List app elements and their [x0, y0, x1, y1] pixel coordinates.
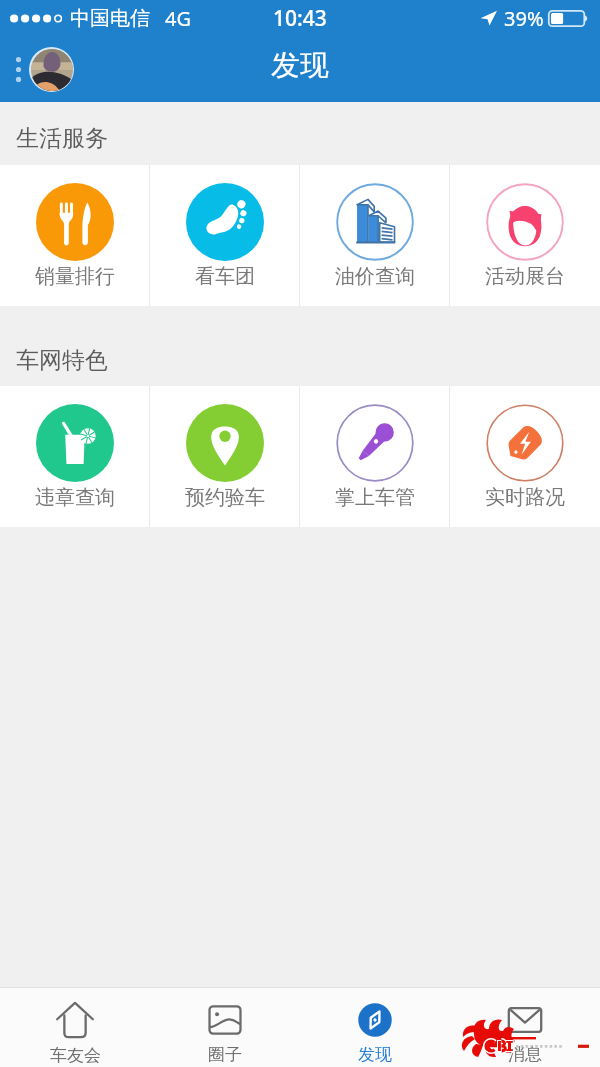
button[interactable]: 圈子	[150, 987, 300, 1067]
staticText: 发现	[358, 1044, 392, 1065]
button[interactable]: 车友会	[0, 987, 150, 1067]
button[interactable]: More options	[9, 47, 27, 91]
staticText: 预约验车	[185, 485, 265, 510]
staticText: 车网特色	[16, 346, 108, 375]
button[interactable]: 预约验车	[150, 386, 300, 527]
staticText: 违章查询	[35, 485, 115, 510]
button[interactable]: 发现	[300, 987, 450, 1067]
staticText: 车友会	[50, 1045, 101, 1066]
staticText: 活动展台	[485, 264, 565, 289]
staticText: 油价查询	[335, 264, 415, 289]
staticText: 中国电信	[70, 6, 150, 31]
button[interactable]: 违章查询	[0, 386, 150, 527]
staticText: 39%	[504, 5, 544, 32]
button[interactable]: 油价查询	[300, 165, 450, 306]
staticText: 掌上车管	[335, 485, 415, 510]
button[interactable]: 销量排行	[0, 165, 150, 306]
button[interactable]: 消息	[450, 987, 600, 1067]
button[interactable]: Profile	[28, 46, 75, 93]
button[interactable]: 掌上车管	[300, 386, 450, 527]
staticText: 生活服务	[16, 124, 108, 153]
staticText: 4G	[165, 5, 191, 32]
staticText: 销量排行	[35, 264, 115, 289]
button[interactable]: 实时路况	[450, 386, 600, 527]
staticText: 消息	[508, 1044, 542, 1065]
staticText: 10:43	[273, 4, 327, 33]
button[interactable]: 看车团	[150, 165, 300, 306]
staticText: 发现	[271, 47, 329, 84]
button[interactable]: 活动展台	[450, 165, 600, 306]
staticText: 圈子	[208, 1044, 242, 1065]
staticText: 实时路况	[485, 485, 565, 510]
staticText: 看车团	[195, 264, 255, 289]
